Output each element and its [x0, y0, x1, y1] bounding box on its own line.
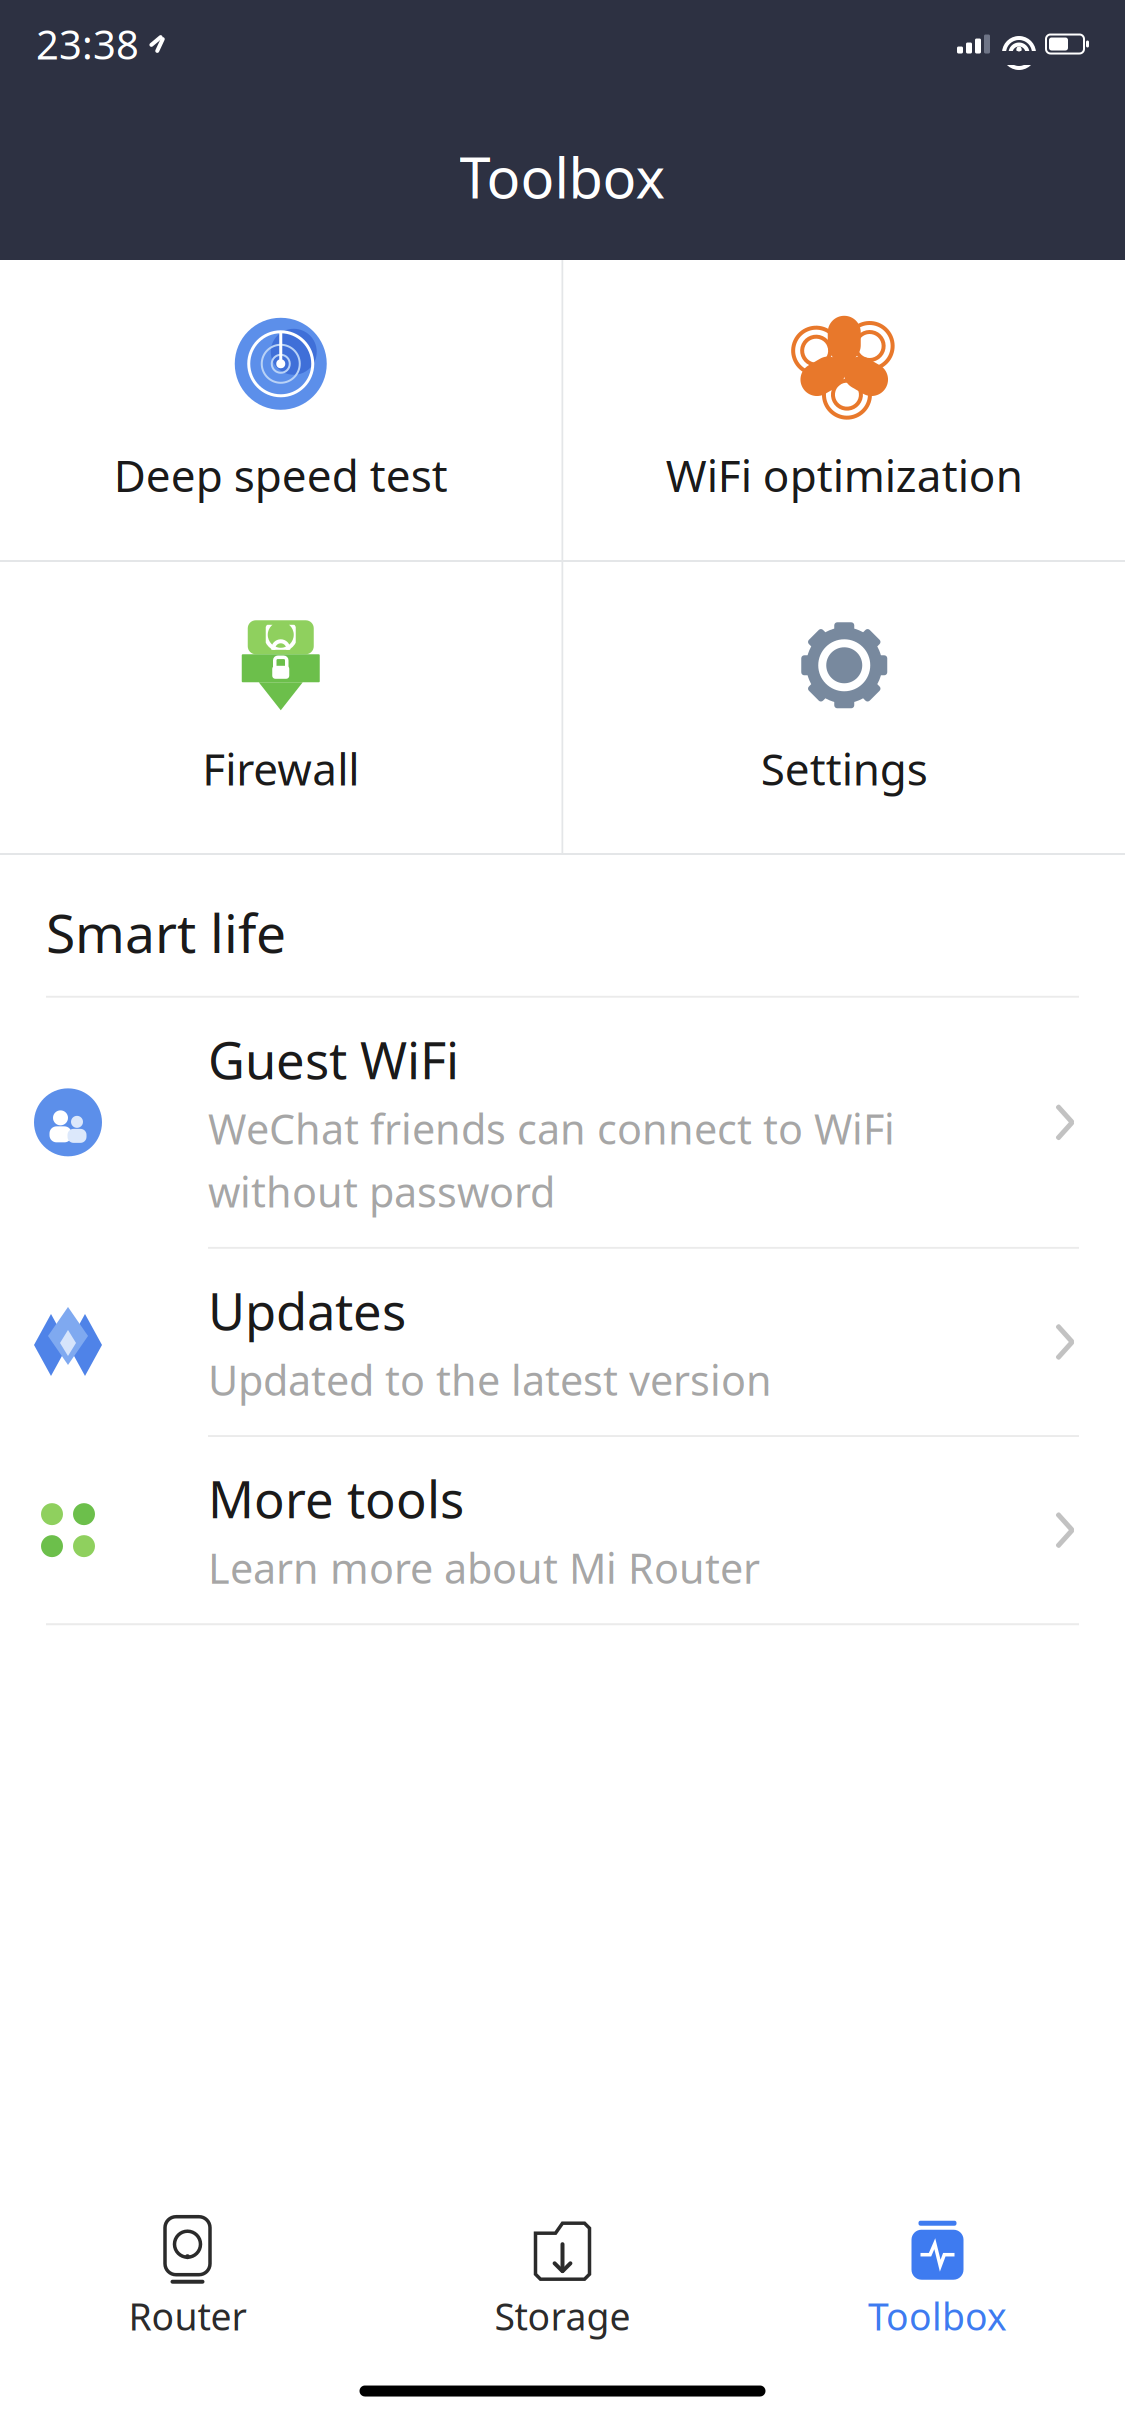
staticText: Toolbox: [459, 140, 665, 214]
staticText: Router: [128, 2291, 246, 2341]
staticText: Learn more about Mi Router: [208, 1540, 760, 1595]
staticText: Storage: [494, 2291, 630, 2341]
button[interactable]: Settings: [563, 562, 1125, 853]
staticText: WiFi optimization: [666, 446, 1023, 504]
staticText: Updated to the latest version: [208, 1352, 772, 1407]
button[interactable]: Toolbox: [750, 2201, 1125, 2351]
staticText: 23:38: [36, 17, 139, 70]
button[interactable]: WiFi optimization: [563, 260, 1125, 560]
staticText: Toolbox: [868, 2291, 1007, 2341]
button[interactable]: Router: [0, 2201, 375, 2351]
staticText: Smart life: [46, 897, 286, 968]
staticText: Updates: [208, 1277, 406, 1344]
staticText: Guest WiFi: [208, 1026, 459, 1093]
staticText: Settings: [761, 739, 928, 798]
button[interactable]: Guest WiFi: [0, 998, 1125, 1247]
button[interactable]: Deep speed test: [0, 260, 561, 560]
staticText: without password: [208, 1164, 555, 1219]
staticText: Firewall: [202, 739, 359, 798]
staticText: WeChat friends can connect to WiFi: [208, 1101, 895, 1156]
button[interactable]: Storage: [375, 2201, 750, 2351]
staticText: Deep speed test: [114, 446, 448, 504]
button[interactable]: Updates: [0, 1249, 1125, 1435]
button[interactable]: Firewall: [0, 562, 561, 853]
button[interactable]: More tools: [0, 1437, 1125, 1623]
staticText: More tools: [208, 1465, 464, 1532]
